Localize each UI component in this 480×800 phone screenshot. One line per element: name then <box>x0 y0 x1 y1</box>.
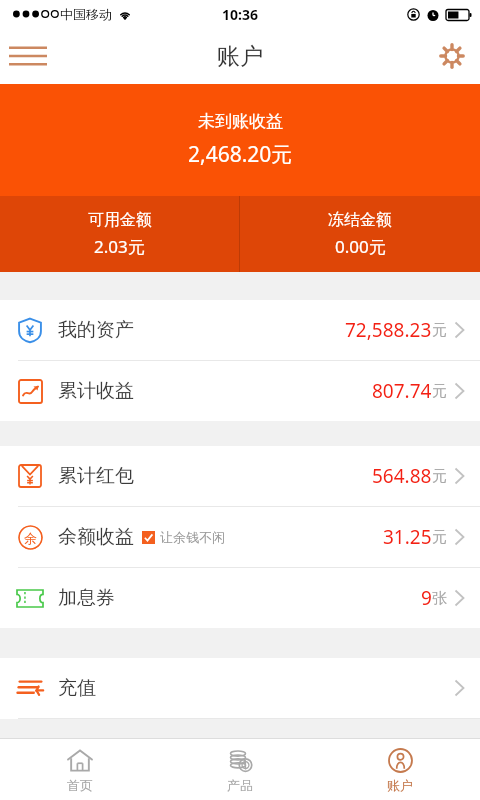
staticText: 累计红包 <box>58 464 134 488</box>
staticText: 可用金额 <box>88 210 152 230</box>
button[interactable]: Settings <box>424 28 480 84</box>
staticText: 元 <box>432 467 447 486</box>
staticText: 余额收益 <box>58 525 134 549</box>
staticText: 账户 <box>217 42 263 71</box>
button[interactable]: 首页 <box>0 739 160 800</box>
staticText: 未到账收益 <box>198 111 283 132</box>
button[interactable]: 可用金额 <box>0 196 239 272</box>
button[interactable]: 产品 <box>160 739 320 800</box>
staticText: 冻结金额 <box>328 210 392 230</box>
staticText: 加息券 <box>58 586 115 610</box>
staticText: 让余钱不闲 <box>160 529 225 545</box>
staticText: 我的资产 <box>58 318 134 342</box>
staticText: 9 <box>421 585 432 611</box>
staticText: 元 <box>432 321 447 340</box>
staticText: 余 <box>24 530 37 546</box>
staticText: 564.88 <box>372 463 432 489</box>
staticText: 元 <box>432 382 447 401</box>
button[interactable]: 累计收益 <box>0 361 480 421</box>
button[interactable]: 累计红包 <box>0 446 480 506</box>
staticText: 张 <box>432 589 447 608</box>
staticText: 807.74 <box>372 378 432 404</box>
staticText: 2.03元 <box>94 235 145 258</box>
staticText: 10:36 <box>222 5 258 24</box>
button[interactable]: 我的资产 <box>0 300 480 360</box>
staticText: 72,588.23 <box>345 317 432 343</box>
staticText: 2,468.20元 <box>188 140 293 169</box>
staticText: 31.25 <box>383 524 432 550</box>
button[interactable]: 充值 <box>0 658 480 718</box>
staticText: 账户 <box>387 777 413 793</box>
staticText: 首页 <box>67 777 93 793</box>
staticText: 0.00元 <box>335 235 386 258</box>
button[interactable]: Menu <box>0 28 56 84</box>
button[interactable]: 冻结金额 <box>240 196 480 272</box>
staticText: 产品 <box>227 777 253 793</box>
staticText: 充值 <box>58 676 96 700</box>
button[interactable]: 加息券 <box>0 568 480 628</box>
button[interactable]: 余 <box>0 507 480 567</box>
button[interactable]: 账户 <box>320 739 480 800</box>
staticText: 中国移动 <box>60 6 112 22</box>
staticText: 累计收益 <box>58 379 134 403</box>
staticText: 元 <box>432 528 447 547</box>
